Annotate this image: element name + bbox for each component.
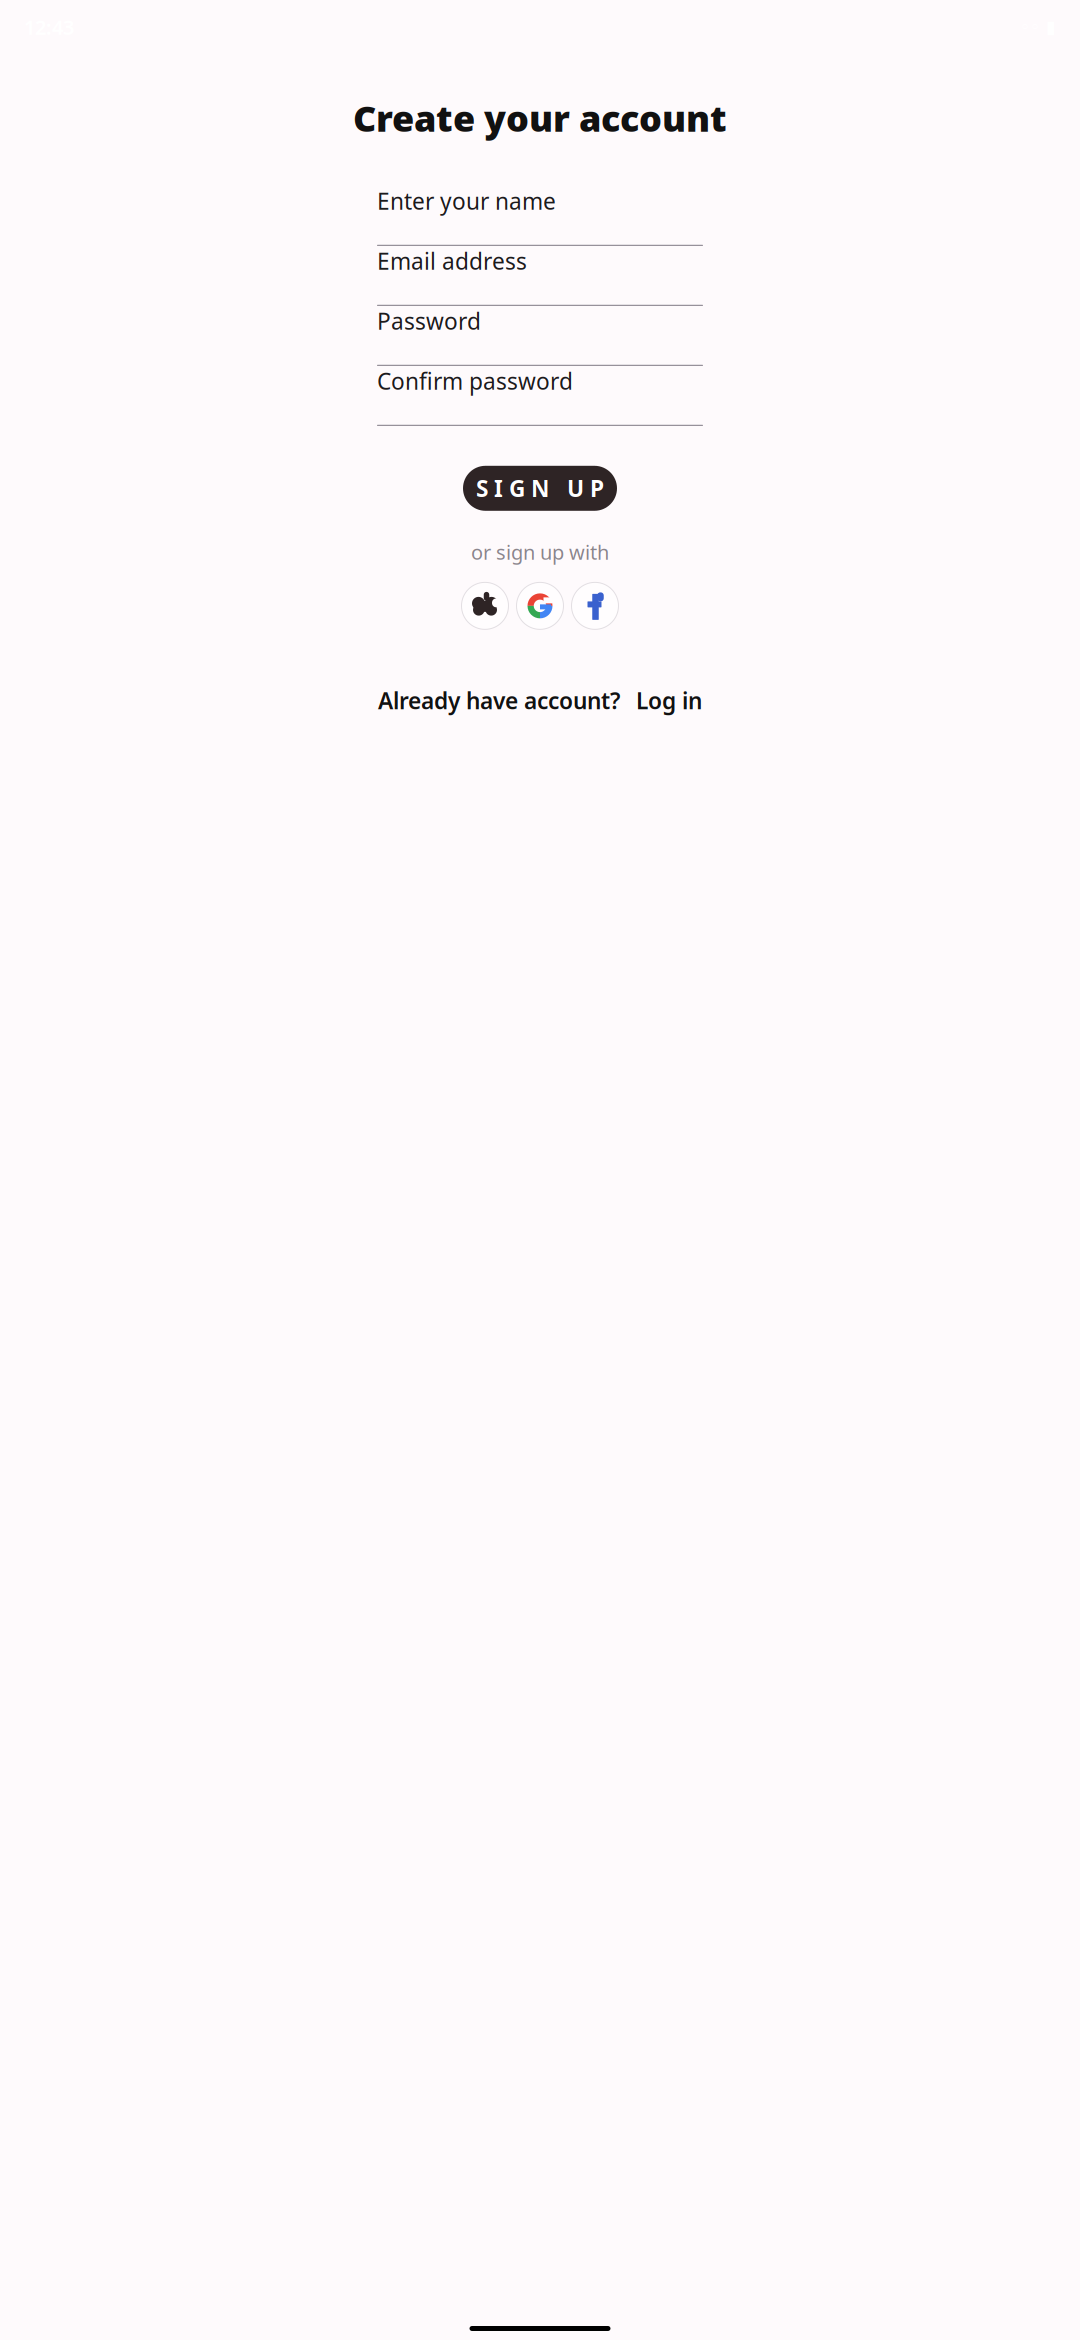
button[interactable]: Password [377,306,703,366]
staticText: Enter your name [377,186,556,216]
button[interactable]: Sign up with Google [516,582,563,629]
button[interactable]: Email address [377,246,703,306]
button[interactable]: Confirm password [377,366,703,426]
staticText: Password [377,306,481,336]
staticText: Confirm password [377,366,573,396]
staticText: S I G N U P [476,473,604,503]
button[interactable]: Enter your name [377,186,703,246]
button[interactable]: Log in [636,685,702,715]
staticText: Log in [636,685,702,715]
staticText: Create your account [353,94,727,142]
staticText: Email address [377,246,527,276]
staticText: Already have account? [378,685,620,715]
button[interactable]: S I G N U P [463,466,617,511]
button[interactable]: Sign up with Facebook [571,582,618,629]
staticText: or sign up with [471,539,609,565]
button[interactable]: Sign up with Apple [461,582,508,629]
